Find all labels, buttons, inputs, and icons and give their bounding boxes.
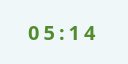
staticText: 05:14 (28, 19, 100, 46)
